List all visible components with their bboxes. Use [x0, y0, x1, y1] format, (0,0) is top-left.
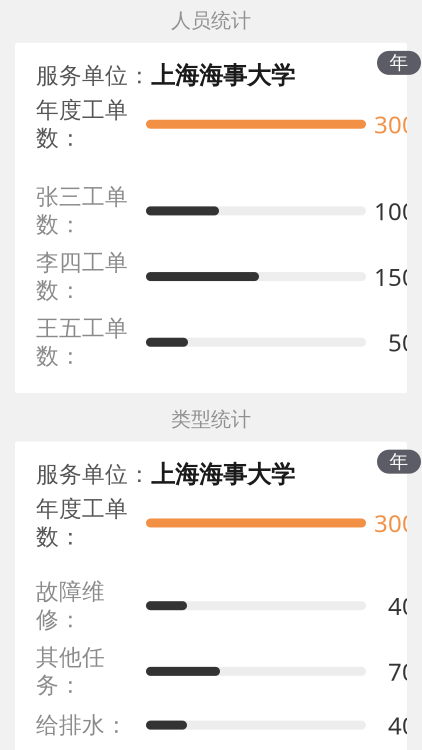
- staticText: 年: [389, 450, 408, 473]
- staticText: 服务单位：: [36, 460, 151, 488]
- staticText: 上海海事大学: [151, 460, 295, 489]
- staticText: 3000: [374, 108, 422, 140]
- staticText: 1000: [374, 195, 422, 227]
- staticText: 年度工单数：: [36, 96, 128, 152]
- staticText: 故障维修：: [36, 578, 105, 633]
- staticText: 年: [389, 51, 408, 74]
- staticText: 上海海事大学: [151, 61, 295, 90]
- staticText: 张三工单数：: [36, 183, 128, 239]
- staticText: 类型统计: [171, 407, 251, 432]
- staticText: 3000: [374, 507, 422, 539]
- staticText: 服务单位：: [36, 62, 151, 89]
- staticText: 王五工单数：: [36, 314, 128, 370]
- staticText: 700: [388, 655, 422, 687]
- staticText: 给排水：: [36, 711, 128, 739]
- staticText: 其他任务：: [36, 643, 105, 699]
- staticText: 400: [388, 590, 422, 622]
- staticText: 500: [388, 326, 422, 358]
- staticText: 李四工单数：: [36, 249, 128, 304]
- staticText: 人员统计: [171, 8, 251, 33]
- staticText: 1500: [374, 261, 422, 292]
- staticText: 400: [388, 709, 422, 741]
- staticText: 年度工单数：: [36, 495, 128, 551]
